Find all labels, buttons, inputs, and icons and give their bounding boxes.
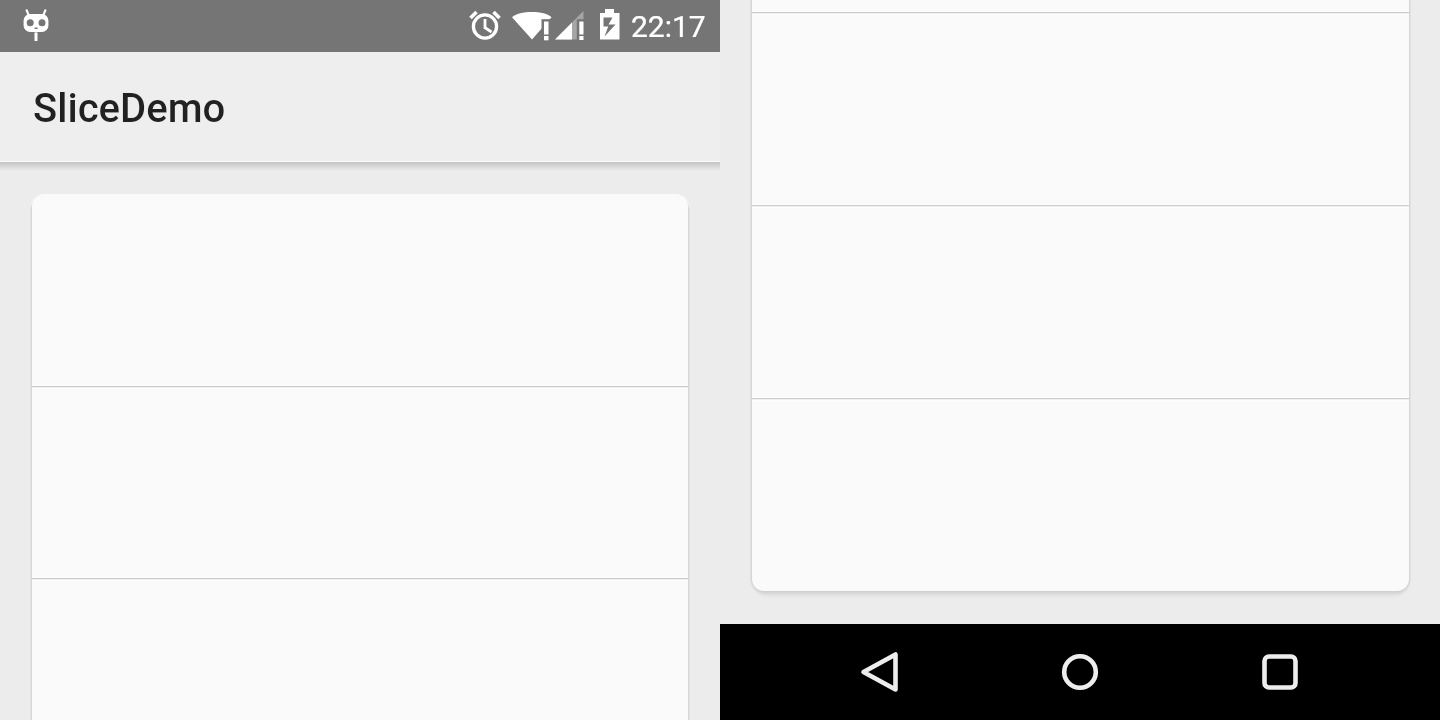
staticText: SliceDemo xyxy=(33,85,226,132)
button[interactable] xyxy=(752,0,1409,591)
button[interactable]: Recents xyxy=(1232,624,1328,720)
button[interactable]: Home xyxy=(1032,624,1128,720)
staticText: 22:17 xyxy=(631,9,706,44)
button[interactable]: Back xyxy=(832,624,928,720)
